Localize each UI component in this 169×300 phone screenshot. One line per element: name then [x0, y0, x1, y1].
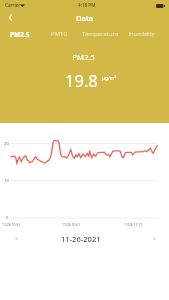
button[interactable]: Temperature: [79, 28, 121, 40]
button[interactable]: PM2.5: [4, 28, 36, 40]
staticText: 20: [4, 141, 9, 147]
staticText: Data: [76, 13, 94, 23]
staticText: 11/26 10:51: [62, 222, 81, 226]
staticText: PM2.5: [10, 30, 30, 39]
button[interactable]: PM10: [47, 28, 71, 40]
button[interactable]: Previous day: [9, 231, 23, 245]
staticText: 11/26 10:31: [2, 222, 21, 226]
button[interactable]: Next day: [147, 231, 161, 245]
staticText: µg/m³: [102, 75, 116, 82]
staticText: 0: [6, 215, 9, 221]
button[interactable]: Back: [2, 9, 18, 25]
staticText: 11/26 11:11: [124, 222, 143, 226]
staticText: Humidity: [129, 30, 155, 38]
staticText: PM2.5: [0, 52, 168, 62]
staticText: 11-26-2021: [61, 234, 101, 244]
staticText: PM10: [51, 30, 67, 38]
button[interactable]: Humidity: [126, 28, 158, 40]
staticText: 4:18 PM: [78, 2, 96, 8]
staticText: 19.8: [65, 69, 98, 91]
staticText: Temperature: [82, 30, 119, 38]
staticText: 10: [4, 178, 9, 184]
staticText: Carrier: [5, 2, 21, 8]
